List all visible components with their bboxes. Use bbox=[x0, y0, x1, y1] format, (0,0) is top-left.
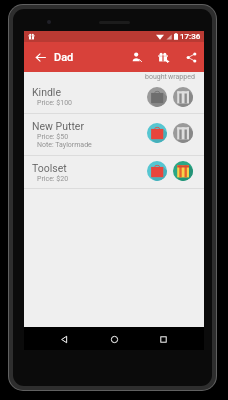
staticText: Price: $50 bbox=[37, 133, 69, 141]
staticText: Toolset bbox=[32, 162, 67, 174]
button[interactable]: Recent apps bbox=[152, 328, 174, 350]
staticText: Kindle bbox=[32, 86, 61, 98]
button[interactable]: Mark wrapped bbox=[173, 161, 193, 181]
button[interactable]: New Putter bbox=[24, 114, 204, 155]
button[interactable]: Mark bought bbox=[147, 123, 167, 143]
button[interactable]: Back bbox=[53, 328, 75, 350]
staticText: 17:36 bbox=[180, 32, 201, 41]
button[interactable]: Mark wrapped bbox=[173, 123, 193, 143]
staticText: Dad bbox=[54, 51, 74, 64]
staticText: Note: Taylormade bbox=[37, 141, 92, 149]
staticText: wrapped bbox=[168, 73, 195, 81]
button[interactable]: Add person bbox=[127, 42, 147, 72]
staticText: bought bbox=[145, 73, 167, 81]
button[interactable]: Kindle bbox=[24, 80, 204, 113]
staticText: Price: $20 bbox=[37, 175, 69, 183]
button[interactable]: Navigate up bbox=[30, 42, 50, 72]
staticText: New Putter bbox=[32, 120, 84, 132]
staticText: Price: $100 bbox=[37, 99, 73, 107]
button[interactable]: Home bbox=[103, 328, 125, 350]
button[interactable]: Mark wrapped bbox=[173, 87, 193, 107]
button[interactable]: Add gift bbox=[153, 42, 173, 72]
button[interactable]: Share bbox=[181, 42, 201, 72]
button[interactable]: Mark bought bbox=[147, 87, 167, 107]
button[interactable]: Toolset bbox=[24, 156, 204, 188]
button[interactable]: Mark bought bbox=[147, 161, 167, 181]
